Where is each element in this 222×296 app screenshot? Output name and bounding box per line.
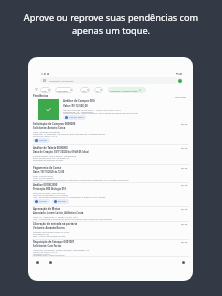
staticText: Tarefa bbox=[81, 89, 86, 92]
button[interactable]: Pesquisar Solicitação bbox=[40, 77, 183, 84]
button[interactable]: Início bbox=[48, 260, 53, 265]
staticText: Visitante: Amanda Barros bbox=[33, 226, 65, 229]
button[interactable]: Aprovar bbox=[33, 199, 50, 204]
button[interactable]: Alterações Tipo bbox=[55, 87, 73, 93]
button[interactable]: Pagamento de Conta bbox=[28, 166, 193, 181]
staticText: Tipo: Aquisição Solicitação bbox=[33, 131, 60, 133]
button[interactable]: Solicitação de Compras 0000000 bbox=[28, 122, 193, 143]
button[interactable]: Aprovar bbox=[33, 138, 50, 143]
staticText: Pendências bbox=[33, 94, 49, 98]
button[interactable]: Conta do usuário bbox=[178, 79, 182, 83]
staticText: Prestação 000 Biologia 018 bbox=[33, 187, 66, 190]
staticText: Economia da entrega: 00 dias bbox=[33, 159, 64, 161]
staticText: Obs.: Acesso autorizado ao mês bbox=[33, 235, 66, 237]
staticText: Previsão de entrada: 02/02 às 12:00 bbox=[33, 231, 70, 233]
button[interactable]: Mais opções bbox=[181, 260, 186, 265]
staticText: Recusar bbox=[58, 200, 67, 203]
button[interactable]: Aprovação de Metas bbox=[28, 207, 193, 220]
staticText: Aprovação de Metas bbox=[33, 207, 61, 211]
button[interactable]: Aprovar agora bbox=[63, 115, 86, 120]
button[interactable]: Análise de Tabela 0000000 bbox=[28, 146, 193, 161]
staticText: Análise de Tabela 0000000 bbox=[33, 146, 68, 150]
staticText: Solicitante: Antonio Costa bbox=[33, 126, 66, 129]
button[interactable]: Anterior bbox=[35, 260, 40, 265]
button[interactable]: Ver todos bbox=[174, 94, 188, 99]
staticText: Cliente/Tabela: Lorem ipsum - Tabela 000… bbox=[33, 155, 77, 157]
staticText: Associado: Lorem Lotsie, Atlântica Costa bbox=[33, 211, 84, 214]
button[interactable]: Requisição de Estoque 0001001 bbox=[28, 240, 193, 257]
staticText: Aprovar bbox=[39, 200, 48, 203]
button[interactable]: Análise de Compra 000 bbox=[28, 99, 193, 120]
staticText: Tipo bbox=[95, 89, 99, 92]
button[interactable]: Análise 001002300 bbox=[28, 183, 193, 204]
button[interactable]: Recusar bbox=[52, 199, 69, 204]
staticText: Unidade: Otto - Belo Horizonte bbox=[33, 254, 65, 256]
staticText: R$ 00 bbox=[181, 183, 188, 186]
staticText: Aprove ou reprove suas pendências com ap… bbox=[8, 11, 214, 37]
staticText: Aprovar agora bbox=[69, 116, 84, 119]
staticText: Serviço Tomado: 30/04/2021 | Centro de c… bbox=[63, 109, 121, 111]
staticText: R$ 00 bbox=[181, 122, 188, 125]
staticText: Aprovar bbox=[39, 139, 48, 142]
staticText: R$ 00 bbox=[181, 222, 188, 225]
staticText: R$ 00 bbox=[181, 207, 188, 210]
staticText: Lorem sit mollis, dolor tincidunt, nunc … bbox=[63, 112, 138, 114]
button[interactable]: Tipo bbox=[94, 87, 103, 93]
staticText: Contratado: 10 - Comprador bbox=[63, 111, 94, 113]
staticText: Obs.: aprovação pendente com 01 classifi… bbox=[33, 196, 106, 198]
staticText: Materiais: 12 materiais, 02 serviços sem… bbox=[33, 133, 106, 135]
staticText: Centro de custo: 710 15 bbox=[33, 135, 58, 137]
staticText: Solicitante: Antonio Costa bbox=[109, 89, 138, 92]
staticText: Requisitos: 0000 bbox=[33, 253, 50, 255]
button[interactable]: Filtros bbox=[35, 88, 38, 91]
staticText: Solicitante: Caio Farias bbox=[33, 244, 62, 247]
staticText: Materiais: 8 produtos, papéis amarelo, e… bbox=[33, 249, 89, 251]
button[interactable]: Compras bbox=[40, 87, 51, 93]
staticText: R$ 00 bbox=[181, 240, 188, 243]
staticText: Data de correção: Eles: 000 000 bbox=[33, 192, 65, 194]
staticText: Compras bbox=[41, 89, 47, 92]
staticText: Obs.: consideradas produções atuais no e… bbox=[33, 218, 113, 220]
staticText: Valor: R$ 12.500,00 bbox=[63, 104, 88, 108]
staticText: Referente a entrega dos materiais aplica… bbox=[33, 179, 129, 181]
staticText: Valor Conta: 000000 bbox=[33, 177, 54, 179]
staticText: Data de execução: 00 / 00/0000 Pçs bbox=[33, 157, 70, 159]
staticText: Ver todos bbox=[175, 95, 187, 98]
staticText: Período: 20/09/2020 à 22/12/2020 bbox=[33, 194, 68, 196]
button[interactable]: Liberação de entrada na portaria bbox=[28, 222, 193, 237]
staticText: Liberação de entrada na portaria bbox=[33, 222, 78, 226]
staticText: Pesquisar Solicitação bbox=[49, 79, 74, 82]
staticText: Requisição de Estoque 0001001 bbox=[33, 240, 75, 244]
staticText: Filial: Açucena 0000 bbox=[33, 175, 54, 177]
button[interactable]: Solicitante: Antonio Costa bbox=[108, 87, 146, 93]
staticText: Alterações Tipo bbox=[56, 89, 69, 92]
staticText: Documento: RG bbox=[33, 233, 50, 235]
staticText: Análise 001002300 bbox=[33, 183, 58, 187]
staticText: Centro de custo: 710 15 bbox=[33, 251, 58, 253]
staticText: Solicitação de Compras 0000000 bbox=[33, 122, 76, 126]
staticText: Análise de Compra 000 bbox=[63, 99, 95, 103]
staticText: Data: 15/11/2020 às 12:00 bbox=[33, 170, 65, 173]
staticText: Setor: 01 - Relatórios 11 metas (12 até … bbox=[33, 216, 78, 218]
staticText: R$ 00 bbox=[181, 146, 188, 149]
button[interactable]: Tarefa bbox=[80, 87, 90, 93]
staticText: R$ 00 bbox=[181, 166, 188, 169]
staticText: Data de Criação: 03/11/2020 às 09:48:05 … bbox=[33, 150, 89, 153]
staticText: Pagamento de Conta bbox=[33, 166, 62, 170]
